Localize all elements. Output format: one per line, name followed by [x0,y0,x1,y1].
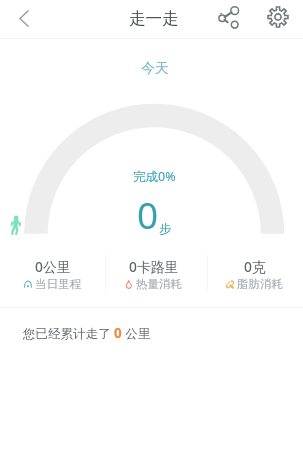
staticText: 当日里程 [35,277,81,291]
button[interactable]: 0克 [204,253,303,303]
staticText: 走一走 [129,8,179,29]
button[interactable]: 0公里 [2,253,103,303]
staticText: 公里 [122,325,151,342]
staticText: 完成0% [133,168,176,185]
staticText: 热量消耗 [136,277,182,291]
staticText: 脂肪消耗 [237,277,283,291]
button[interactable]: Settings [258,0,298,36]
staticText: 步 [159,221,172,237]
button[interactable]: 0卡路里 [103,253,204,303]
button[interactable]: Back [0,0,48,37]
staticText: 0 [114,324,122,342]
staticText: 您已经累计走了 [23,325,114,342]
staticText: 0卡路里 [129,257,179,276]
staticText: 0克 [244,257,266,276]
staticText: 今天 [141,60,169,78]
staticText: 0公里 [35,257,71,276]
button[interactable]: Share [206,0,249,35]
staticText: 0 [137,189,159,239]
